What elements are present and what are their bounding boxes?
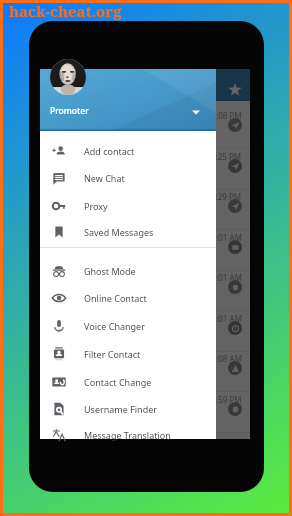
staticText: 10:08 PM xyxy=(207,110,242,121)
button[interactable]: 11:01 AM xyxy=(40,231,250,271)
staticText: Saved Messages xyxy=(84,226,154,238)
staticText: Contact Change xyxy=(84,376,152,388)
staticText: New Chat xyxy=(84,172,125,184)
button[interactable]: Message Translation xyxy=(40,421,216,448)
button[interactable]: Saved messages xyxy=(228,83,242,97)
staticText: Voice Changer xyxy=(84,320,145,332)
staticText: Username Finder xyxy=(84,403,158,415)
staticText: Online Contact xyxy=(84,292,147,304)
button[interactable]: Expand accounts xyxy=(187,103,205,121)
button[interactable]: 11:01 AM xyxy=(40,271,250,311)
staticText: Proxy xyxy=(84,200,108,212)
staticText: 7:29 PM xyxy=(211,191,242,202)
button[interactable]: Username Finder xyxy=(40,395,216,422)
staticText: Add contact xyxy=(84,145,135,157)
button[interactable]: Filter Contact xyxy=(40,340,216,367)
button[interactable]: 10:08 AM xyxy=(40,352,250,392)
staticText: Message Translation xyxy=(84,429,171,441)
button[interactable]: 7:29 PM xyxy=(40,190,250,230)
button[interactable]: Add contact xyxy=(40,137,216,164)
button[interactable]: 11:01 AM xyxy=(40,312,250,352)
button[interactable]: 9:25 PM xyxy=(40,150,250,190)
button[interactable]: Profile photo xyxy=(50,59,86,95)
button[interactable]: Proxy xyxy=(40,192,216,219)
staticText: Filter Contact xyxy=(84,348,141,360)
staticText: 11:01 AM xyxy=(207,272,242,283)
staticText: 11:01 AM xyxy=(207,313,242,324)
button[interactable]: Ghost Mode xyxy=(40,257,216,284)
staticText: 11:59 PM xyxy=(207,394,242,405)
button[interactable]: Voice Changer xyxy=(40,312,216,339)
staticText: 9:25 PM xyxy=(211,151,242,162)
button[interactable]: Contact Change xyxy=(40,368,216,395)
staticText: Promoter xyxy=(50,105,89,117)
staticText: hack-cheat.org xyxy=(9,1,122,21)
button[interactable]: Online Contact xyxy=(40,284,216,311)
button[interactable]: 11:59 PM xyxy=(40,393,250,433)
staticText: Ghost Mode xyxy=(84,265,136,277)
staticText: 10:08 AM xyxy=(207,353,242,364)
button[interactable]: Saved Messages xyxy=(40,218,216,245)
staticText: 11:01 AM xyxy=(207,232,242,243)
button[interactable]: 10:08 PM xyxy=(40,109,250,149)
button[interactable]: New Chat xyxy=(40,164,216,191)
